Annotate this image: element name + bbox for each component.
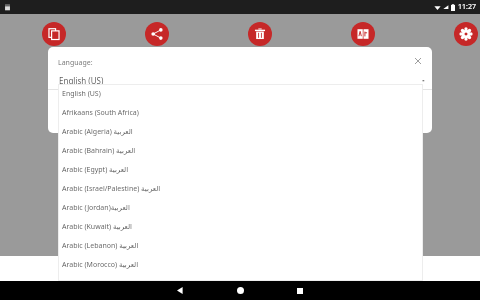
button[interactable]: Afrikaans (South Africa) <box>58 103 423 122</box>
staticText: Language: <box>58 58 93 68</box>
button[interactable]: Arabic (Jordan)العربية <box>58 198 423 217</box>
staticText: 11:27 <box>458 2 476 12</box>
button[interactable]: Close <box>411 54 425 68</box>
button[interactable]: Settings <box>454 22 478 46</box>
staticText: Arabic (Lebanon) العربية <box>62 241 139 251</box>
button[interactable]: Arabic (Algeria) العربية <box>58 122 423 141</box>
button[interactable]: Arabic (Bahrain) العربية <box>58 141 423 160</box>
button[interactable]: Translate <box>351 22 375 46</box>
button[interactable]: Copy <box>42 22 66 46</box>
button[interactable]: Back <box>165 281 195 300</box>
staticText: Afrikaans (South Africa) <box>62 108 139 118</box>
button[interactable]: Home <box>225 281 255 300</box>
button[interactable]: English (US) <box>58 84 423 103</box>
button[interactable]: English (US) <box>48 71 432 90</box>
staticText: Arabic (Egypt) العربية <box>62 165 129 175</box>
button[interactable]: Arabic (Egypt) العربية <box>58 160 423 179</box>
staticText: Arabic (Bahrain) العربية <box>62 146 136 156</box>
staticText: English (US) <box>62 89 101 99</box>
button[interactable]: Share <box>145 22 169 46</box>
button[interactable]: Arabic (Lebanon) العربية <box>58 236 423 255</box>
button[interactable]: Arabic (Morocco) العربية <box>58 255 423 274</box>
staticText: Arabic (Kuwait) العربية <box>62 222 133 232</box>
staticText: Arabic (Algeria) العربية <box>62 127 133 137</box>
staticText: Arabic (Morocco) العربية <box>62 260 139 270</box>
button[interactable]: Arabic (Israel/Palestine) العربية <box>58 179 423 198</box>
button[interactable]: Recent apps <box>285 281 315 300</box>
staticText: Arabic (Jordan)العربية <box>62 203 130 213</box>
button[interactable]: Delete <box>248 22 272 46</box>
staticText: Arabic (Israel/Palestine) العربية <box>62 184 161 194</box>
button[interactable]: Arabic (Kuwait) العربية <box>58 217 423 236</box>
staticText: English (US) <box>59 75 104 86</box>
